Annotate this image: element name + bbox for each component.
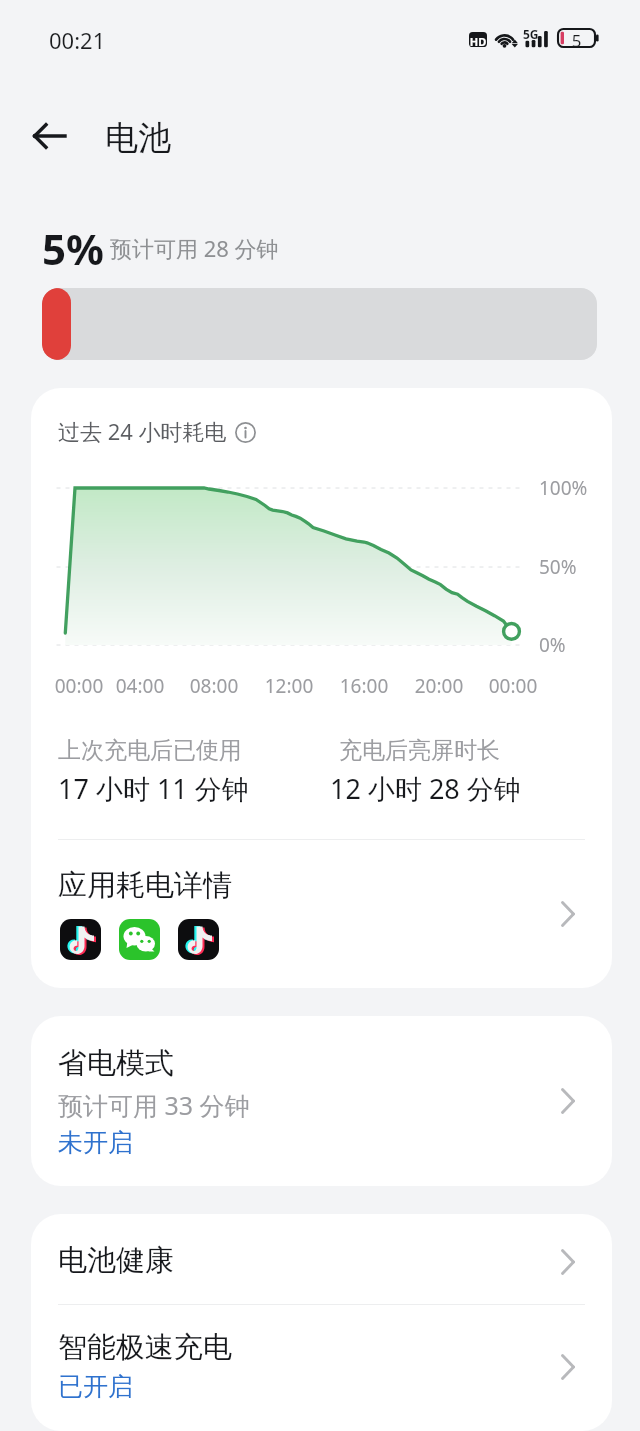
staticText: 00:21 — [49, 25, 106, 55]
staticText: HD — [469, 34, 487, 49]
staticText: 04:00 — [113, 673, 167, 699]
staticText: 12:00 — [262, 673, 316, 699]
staticText: 5% — [42, 220, 104, 277]
staticText: 预计可用 33 分钟 — [58, 1088, 250, 1122]
staticText: 100% — [539, 475, 588, 501]
staticText: 已开启 — [58, 1371, 133, 1402]
staticText: 预计可用 28 分钟 — [110, 233, 279, 263]
button[interactable]: 电池健康 — [31, 1214, 612, 1304]
staticText: 00:00 — [52, 673, 106, 699]
staticText: 电池健康 — [58, 1242, 174, 1279]
staticText: 08:00 — [187, 673, 241, 699]
staticText: 上次充电后已使用 — [58, 736, 242, 765]
staticText: 未开启 — [58, 1127, 133, 1158]
staticText: 12 小时 28 分钟 — [330, 770, 521, 807]
staticText: 5G — [523, 26, 539, 42]
staticText: 电池 — [105, 117, 171, 159]
staticText: 充电后亮屏时长 — [339, 736, 500, 765]
staticText: 20:00 — [412, 673, 466, 699]
staticText: 智能极速充电 — [58, 1329, 232, 1366]
staticText: 16:00 — [337, 673, 391, 699]
staticText: 17 小时 11 分钟 — [58, 770, 249, 807]
button[interactable]: 智能极速充电 — [31, 1305, 612, 1431]
button[interactable]: 应用耗电详情 — [31, 840, 612, 988]
staticText: 应用耗电详情 — [58, 867, 232, 904]
button[interactable]: Back — [16, 106, 84, 166]
staticText: 省电模式 — [58, 1045, 174, 1082]
staticText: 50% — [539, 554, 577, 580]
button[interactable]: 省电模式 — [31, 1016, 612, 1186]
staticText: 过去 24 小时耗电 — [58, 416, 227, 446]
staticText: 5 — [563, 29, 590, 52]
staticText: 0% — [539, 632, 566, 658]
staticText: 00:00 — [486, 673, 540, 699]
